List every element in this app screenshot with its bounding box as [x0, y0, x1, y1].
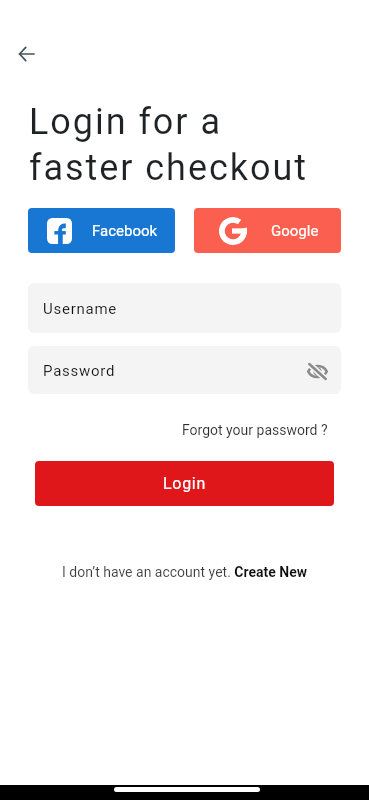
button[interactable]: Show password — [305, 359, 329, 383]
staticText: Google — [271, 222, 319, 240]
button[interactable]: Facebook — [28, 208, 175, 253]
button[interactable]: Login — [35, 461, 334, 506]
staticText: Facebook — [92, 222, 158, 240]
staticText: Login — [163, 474, 206, 493]
button[interactable]: I don’t have an account yet. Create New — [62, 564, 308, 580]
button[interactable]: Username — [28, 283, 341, 333]
button[interactable]: Password — [28, 346, 341, 394]
staticText: Password — [43, 362, 116, 380]
button[interactable]: Back — [11, 38, 42, 69]
staticText: Login for a faster checkout — [29, 101, 308, 189]
button[interactable]: Google — [194, 208, 341, 253]
staticText: Username — [43, 300, 118, 318]
button[interactable]: Forgot your password ? — [182, 422, 369, 438]
